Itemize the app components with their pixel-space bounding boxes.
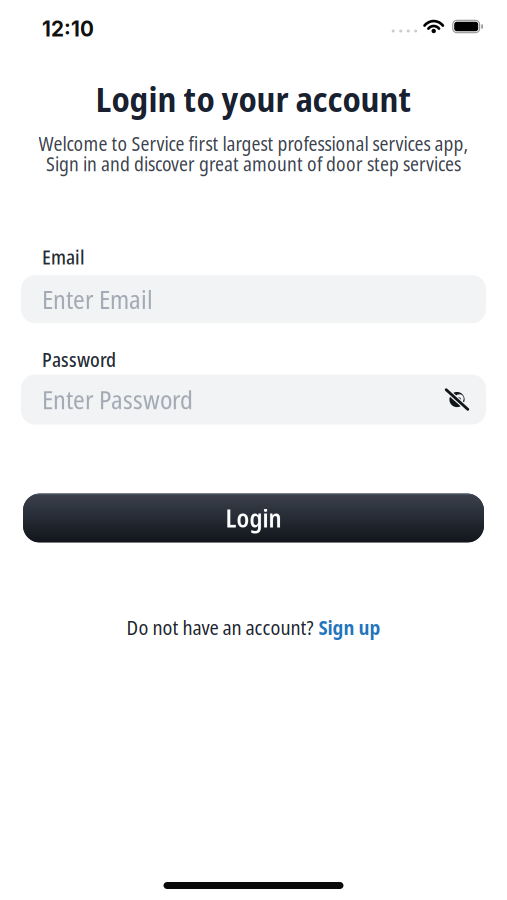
- staticText: Do not have an account?: [126, 613, 313, 641]
- button[interactable]: Sign up: [318, 613, 380, 641]
- staticText: Password: [42, 346, 116, 372]
- staticText: Enter Email: [42, 282, 153, 316]
- staticText: Sign up: [318, 613, 380, 641]
- staticText: Login to your account: [95, 75, 411, 122]
- staticText: 12:10: [42, 16, 94, 41]
- staticText: Welcome to Service first largest profess…: [38, 130, 468, 156]
- staticText: Sign in and discover great amount of doo…: [46, 150, 461, 177]
- staticText: Email: [42, 244, 85, 270]
- button[interactable]: Login: [23, 493, 484, 542]
- button[interactable]: Enter Email: [21, 275, 486, 323]
- staticText: Enter Password: [42, 382, 193, 417]
- staticText: Login: [225, 501, 281, 535]
- button[interactable]: Enter Password: [21, 374, 486, 424]
